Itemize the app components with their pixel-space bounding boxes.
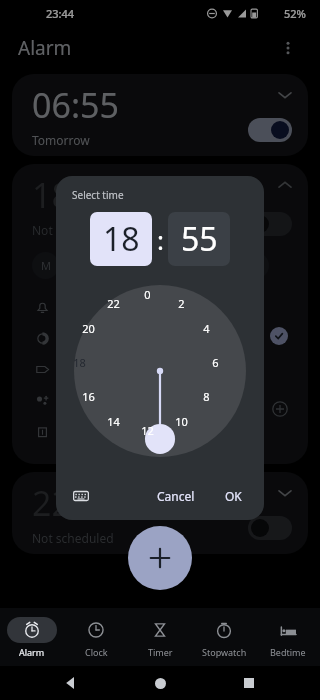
button[interactable]: Default alarm sound — [32, 291, 253, 322]
staticText: 52% — [284, 6, 306, 21]
button[interactable]: Timer — [128, 608, 192, 666]
button[interactable]: More options — [274, 34, 302, 62]
button[interactable]: 14 — [100, 412, 126, 430]
button[interactable]: Add routine — [270, 399, 290, 419]
staticText: Default alarm sound — [66, 299, 182, 315]
button[interactable]: Expand alarm — [12, 472, 308, 554]
staticText: 22 — [107, 296, 120, 311]
button[interactable]: 0 — [134, 285, 160, 303]
button[interactable]: 18 — [66, 353, 92, 371]
button[interactable]: Stopwatch — [192, 608, 256, 666]
button[interactable]: Vibrate — [32, 322, 253, 353]
staticText: 14 — [107, 414, 120, 429]
staticText: 18:55 — [32, 172, 119, 218]
staticText: W — [110, 258, 121, 273]
staticText: Select time — [72, 188, 124, 202]
button[interactable]: Add alarm — [128, 526, 192, 590]
button[interactable]: 55 — [168, 212, 230, 266]
button[interactable]: 6 — [202, 353, 228, 371]
staticText: 55 — [181, 217, 218, 261]
staticText: 2 — [178, 296, 185, 311]
button[interactable]: 22 — [100, 294, 126, 312]
staticText: Timer — [148, 646, 173, 658]
button[interactable]: 2 — [168, 294, 194, 312]
button[interactable]: Vibrate on — [270, 327, 288, 345]
button[interactable]: 18 — [90, 212, 152, 266]
staticText: Alarm — [18, 35, 72, 61]
staticText: Tomorrow — [32, 132, 90, 148]
button[interactable]: 10 — [168, 412, 194, 430]
staticText: Delete — [66, 423, 103, 439]
staticText: 16 — [82, 389, 95, 404]
staticText: 4 — [203, 321, 210, 336]
staticText: 18 — [103, 217, 140, 261]
button[interactable]: T — [137, 252, 164, 279]
button[interactable]: Google Assistant Routine — [32, 384, 253, 415]
staticText: M — [41, 258, 51, 273]
button[interactable]: Label — [32, 353, 253, 384]
button[interactable]: M — [32, 252, 59, 279]
staticText: 12 — [141, 423, 154, 438]
staticText: 18 — [73, 355, 86, 370]
button[interactable]: Expand alarm — [274, 84, 296, 106]
staticText: Label — [66, 361, 97, 377]
button[interactable]: Expand alarm — [12, 74, 308, 156]
staticText: : — [157, 222, 164, 257]
button[interactable]: Toggle alarm — [248, 118, 292, 142]
button[interactable]: F — [172, 252, 199, 279]
button[interactable]: 20 — [75, 319, 101, 337]
button[interactable]: Clock — [64, 608, 128, 666]
staticText: Vibrate — [66, 330, 107, 346]
button[interactable]: Home — [142, 666, 178, 700]
button[interactable]: 8 — [193, 387, 219, 405]
staticText: Cancel — [157, 488, 195, 504]
staticText: Stopwatch — [202, 646, 247, 658]
staticText: Not scheduled — [32, 222, 114, 238]
button[interactable]: S — [207, 252, 234, 279]
staticText: 23:44 — [46, 6, 75, 21]
button[interactable]: 4 — [193, 319, 219, 337]
staticText: 6 — [212, 355, 219, 370]
staticText: 10 — [175, 414, 188, 429]
button[interactable]: Cancel — [149, 483, 203, 509]
button[interactable]: Recents — [231, 666, 267, 700]
button[interactable]: OK — [217, 483, 250, 509]
button[interactable]: Switch to text input — [70, 485, 92, 507]
staticText: Not scheduled — [32, 530, 114, 546]
staticText: F — [183, 258, 189, 273]
staticText: Clock — [85, 646, 108, 658]
button[interactable]: Toggle alarm — [248, 212, 292, 236]
button[interactable]: Toggle alarm — [248, 516, 292, 540]
button[interactable]: W — [102, 252, 129, 279]
staticText: 8 — [203, 389, 210, 404]
staticText: OK — [225, 488, 242, 504]
staticText: 20 — [82, 321, 95, 336]
button[interactable]: 12 — [134, 421, 160, 439]
button[interactable]: Bedtime — [256, 608, 320, 666]
button[interactable]: S — [242, 252, 269, 279]
staticText: 06:55 — [32, 82, 119, 128]
staticText: Alarm — [19, 646, 45, 658]
staticText: Bedtime — [270, 646, 306, 658]
button[interactable]: Alarm — [0, 608, 64, 666]
button[interactable]: Delete — [32, 415, 253, 446]
staticText: T — [147, 258, 154, 273]
button[interactable]: T — [67, 252, 94, 279]
staticText: 22:20 — [32, 480, 119, 526]
button[interactable]: Collapse alarm — [274, 174, 296, 196]
button[interactable]: Expand alarm — [274, 482, 296, 504]
staticText: 0 — [144, 287, 151, 302]
button[interactable]: Back — [53, 666, 89, 700]
button[interactable]: Collapse alarm — [12, 164, 308, 464]
button[interactable]: 16 — [75, 387, 101, 405]
staticText: S — [217, 258, 224, 273]
staticText: Google Assistant Routine — [66, 392, 208, 408]
